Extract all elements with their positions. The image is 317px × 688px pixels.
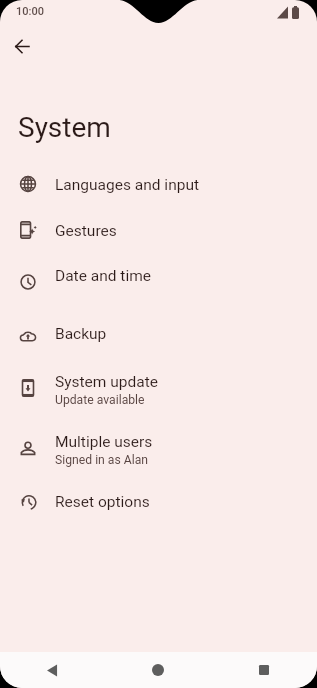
- staticText: Multiple users: [55, 433, 153, 451]
- staticText: Update available: [55, 393, 145, 407]
- button[interactable]: Languages and input: [0, 162, 317, 208]
- staticText: 10:00: [16, 5, 44, 18]
- button[interactable]: Backup: [0, 311, 317, 357]
- button[interactable]: Home: [105, 652, 211, 688]
- button[interactable]: Reset options: [0, 479, 317, 525]
- button[interactable]: Navigate up: [8, 32, 36, 60]
- button[interactable]: Date and time: [0, 253, 317, 299]
- button[interactable]: Recent apps: [211, 652, 317, 688]
- staticText: Signed in as Alan: [55, 453, 149, 467]
- staticText: Languages and input: [55, 176, 200, 194]
- button[interactable]: System update: [0, 358, 317, 420]
- staticText: Backup: [55, 325, 107, 343]
- staticText: Gestures: [55, 222, 117, 240]
- button[interactable]: Gestures: [0, 208, 317, 254]
- staticText: Date and time: [55, 267, 151, 285]
- button[interactable]: Multiple users: [0, 418, 317, 480]
- staticText: Reset options: [55, 493, 150, 511]
- button[interactable]: Back: [0, 652, 105, 688]
- staticText: System: [18, 111, 111, 144]
- staticText: System update: [55, 373, 158, 391]
